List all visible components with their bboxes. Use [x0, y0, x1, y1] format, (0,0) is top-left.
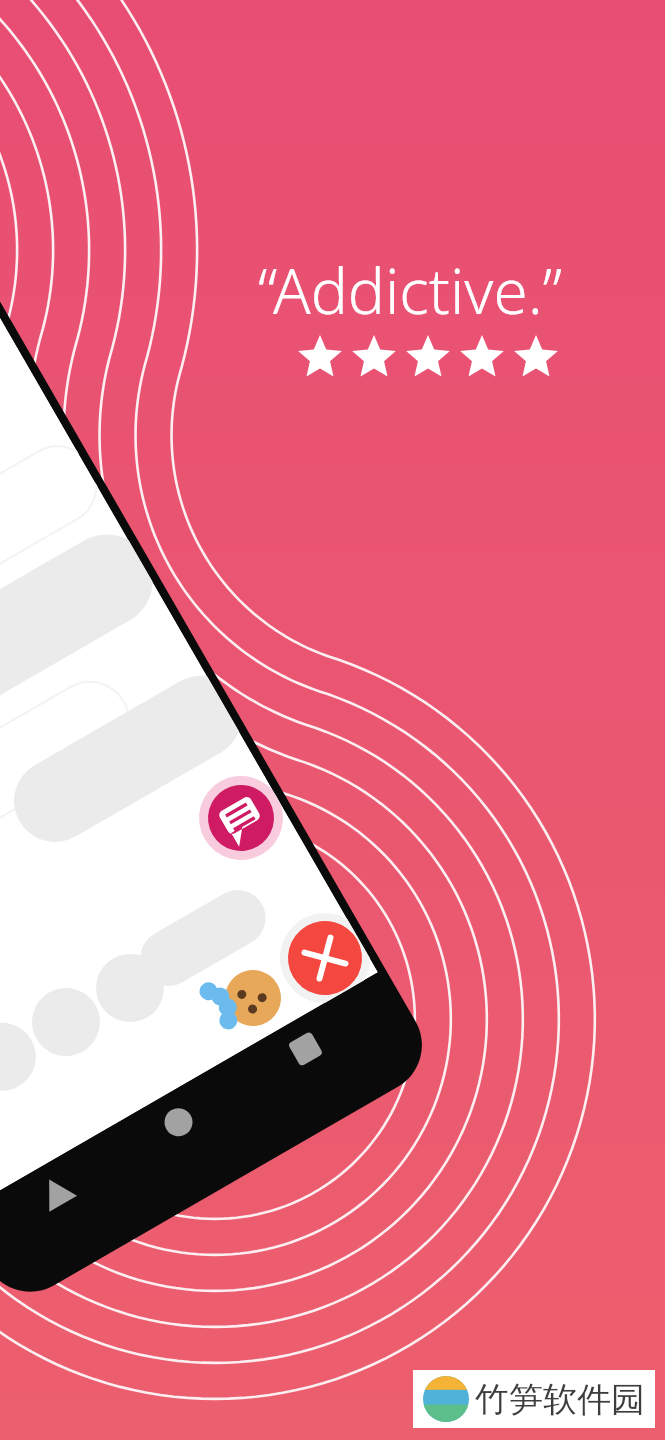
staticText: 竹笋软件园 — [475, 1378, 645, 1421]
staticText: “Addictive.” — [258, 248, 563, 332]
